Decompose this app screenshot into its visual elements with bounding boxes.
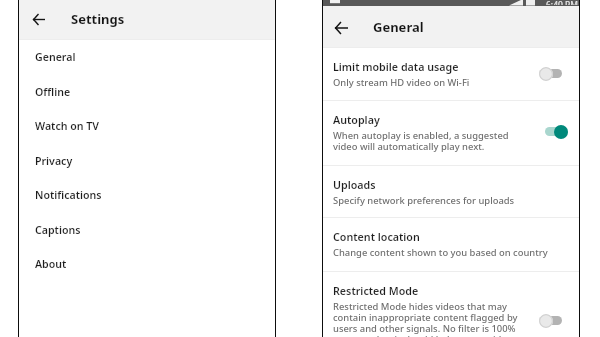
staticText: Autoplay (333, 113, 380, 128)
staticText: 6:40 PM (546, 0, 578, 5)
button[interactable]: Watch on TV (19, 108, 275, 143)
button[interactable]: Restricted Mode (323, 272, 579, 337)
button[interactable]: Switch off (539, 313, 562, 328)
staticText: Content location (333, 230, 420, 245)
staticText: Offline (35, 85, 71, 99)
staticText: Privacy (35, 154, 73, 168)
button[interactable]: Offline (19, 74, 275, 109)
staticText: General (373, 18, 424, 36)
staticText: Specify network preferences for uploads (333, 195, 515, 206)
button[interactable]: Notifications (19, 177, 275, 212)
button[interactable]: Limit mobile data usage (323, 48, 579, 100)
staticText: Limit mobile data usage (333, 60, 459, 75)
staticText: Change content shown to you based on cou… (333, 247, 548, 258)
staticText: Captions (35, 223, 81, 237)
staticText: Restricted Mode (333, 284, 419, 299)
staticText: Restricted Mode hides videos that may co… (333, 301, 518, 337)
staticText: Watch on TV (35, 119, 99, 133)
button[interactable]: Content location (323, 218, 579, 271)
staticText: Uploads (333, 178, 376, 193)
staticText: When autoplay is enabled, a suggested vi… (333, 130, 509, 152)
button[interactable]: Privacy (19, 143, 275, 178)
button[interactable]: Switch on (545, 124, 568, 139)
button[interactable]: Switch off (539, 66, 562, 81)
button[interactable]: General (19, 39, 275, 74)
button[interactable]: Back (331, 18, 351, 38)
staticText: About (35, 257, 67, 271)
button[interactable]: Uploads (323, 166, 579, 217)
staticText: Notifications (35, 188, 102, 202)
button[interactable]: About (19, 246, 275, 281)
button[interactable]: Autoplay (323, 101, 579, 165)
button[interactable]: Back (29, 9, 49, 29)
staticText: Settings (71, 10, 125, 28)
staticText: General (35, 50, 76, 64)
button[interactable]: Captions (19, 212, 275, 247)
staticText: Only stream HD video on Wi-Fi (333, 77, 470, 88)
